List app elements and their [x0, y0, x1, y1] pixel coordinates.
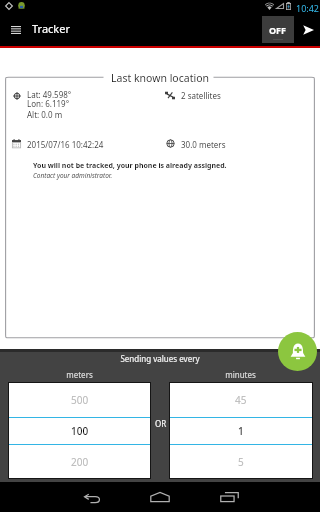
staticText: Contact your administrator.: [33, 171, 113, 180]
button[interactable]: Send: [296, 14, 320, 46]
staticText: meters: [8, 369, 151, 380]
staticText: 5: [238, 455, 244, 469]
staticText: 100: [71, 424, 89, 438]
staticText: 2 satellites: [181, 90, 221, 101]
button[interactable]: Home: [135, 482, 185, 512]
button[interactable]: 1: [170, 418, 312, 444]
staticText: Last known location: [111, 71, 209, 85]
button[interactable]: OFF: [262, 16, 294, 43]
staticText: 45: [235, 393, 247, 407]
button[interactable]: 500: [9, 383, 150, 417]
staticText: You will not be tracked, your phone is a…: [33, 161, 227, 171]
staticText: 30.0 meters: [181, 139, 226, 150]
staticText: Lon: 6.119°: [27, 98, 70, 109]
staticText: OFF: [269, 24, 287, 36]
button[interactable]: Back: [67, 482, 117, 512]
button[interactable]: 45: [170, 383, 312, 417]
button[interactable]: 100: [9, 418, 150, 444]
button[interactable]: Recent apps: [204, 482, 254, 512]
staticText: Lat: 49.598°: [27, 89, 72, 100]
button[interactable]: Add alarm: [278, 332, 317, 371]
staticText: 2015/07/16 10:42:24: [27, 139, 104, 150]
staticText: Alt: 0.0 m: [27, 109, 63, 120]
staticText: 200: [71, 455, 89, 469]
staticText: Sending values every: [0, 353, 320, 364]
staticText: 10:42: [296, 2, 320, 14]
button[interactable]: 200: [9, 446, 150, 478]
staticText: OR: [151, 418, 170, 429]
staticText: minutes: [169, 369, 312, 380]
staticText: 1: [238, 424, 244, 438]
staticText: 500: [71, 393, 89, 407]
button[interactable]: 5: [170, 446, 312, 478]
button[interactable]: Navigation menu: [0, 14, 32, 46]
staticText: Tracker: [32, 21, 70, 36]
